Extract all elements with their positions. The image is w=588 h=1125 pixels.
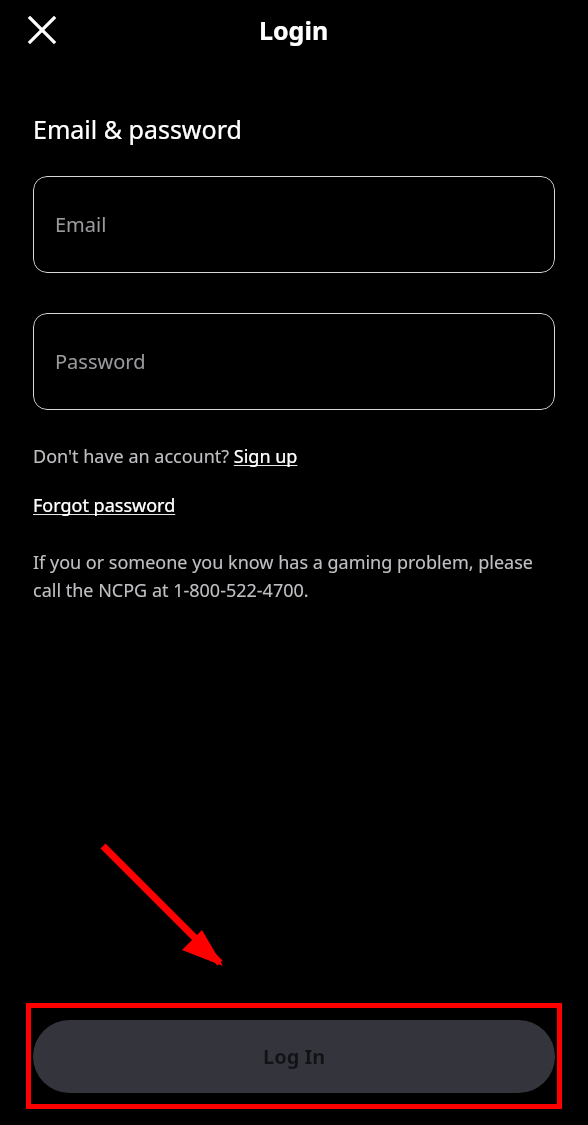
- button[interactable]: Email: [33, 176, 555, 273]
- button[interactable]: Log In: [33, 1020, 555, 1093]
- staticText: Forgot password: [33, 493, 176, 518]
- button[interactable]: Password: [33, 313, 555, 410]
- staticText: Don't have an account? Sign up: [33, 444, 298, 469]
- button[interactable]: Forgot password: [33, 493, 176, 518]
- staticText: Email: [55, 211, 107, 238]
- button[interactable]: Close: [22, 10, 62, 50]
- staticText: Login: [259, 13, 329, 47]
- staticText: If you or someone you know has a gaming …: [33, 550, 548, 602]
- staticText: Password: [55, 348, 146, 375]
- staticText: Email & password: [33, 112, 242, 146]
- staticText: Log In: [263, 1043, 326, 1070]
- button[interactable]: Don't have an account? Sign up: [33, 444, 298, 469]
